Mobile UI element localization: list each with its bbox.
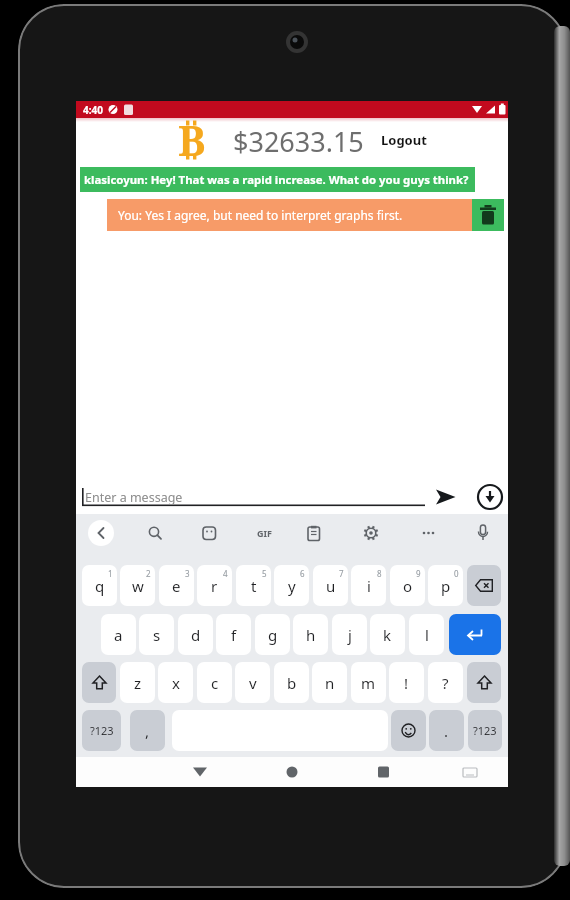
- button[interactable]: [82, 662, 116, 703]
- button[interactable]: You: Yes I agree, but need to interpret …: [107, 199, 472, 231]
- staticText: p: [441, 576, 451, 596]
- button[interactable]: c: [197, 662, 232, 703]
- staticText: 7: [339, 568, 344, 579]
- button[interactable]: GIF: [252, 523, 276, 543]
- button[interactable]: f: [216, 614, 251, 655]
- button[interactable]: i: [351, 565, 386, 606]
- button[interactable]: j: [332, 614, 367, 655]
- button[interactable]: b: [274, 662, 309, 703]
- staticText: i: [367, 576, 371, 596]
- button[interactable]: [359, 759, 407, 785]
- button[interactable]: k: [370, 614, 405, 655]
- staticText: 4:40: [83, 103, 103, 117]
- button[interactable]: t: [236, 565, 271, 606]
- staticText: d: [191, 625, 201, 645]
- button[interactable]: ?123: [82, 710, 121, 751]
- button[interactable]: .: [429, 710, 464, 751]
- button[interactable]: [268, 759, 316, 785]
- staticText: j: [348, 625, 352, 645]
- button[interactable]: d: [178, 614, 213, 655]
- staticText: GIF: [257, 527, 272, 539]
- button[interactable]: l: [409, 614, 444, 655]
- staticText: 0: [454, 568, 459, 579]
- staticText: e: [172, 576, 181, 596]
- staticText: o: [403, 576, 413, 596]
- staticText: 4: [223, 568, 228, 579]
- staticText: .: [444, 721, 449, 741]
- button[interactable]: z: [120, 662, 155, 703]
- staticText: You: Yes I agree, but need to interpret …: [118, 207, 403, 223]
- button[interactable]: [176, 759, 224, 785]
- button[interactable]: g: [255, 614, 290, 655]
- button[interactable]: Logout: [376, 129, 432, 151]
- button[interactable]: [474, 482, 506, 512]
- staticText: u: [326, 576, 336, 596]
- staticText: B: [178, 112, 206, 156]
- staticText: c: [211, 673, 219, 693]
- staticText: 1: [108, 568, 113, 579]
- button[interactable]: ?: [428, 662, 463, 703]
- button[interactable]: m: [351, 662, 386, 703]
- staticText: 9: [416, 568, 421, 579]
- staticText: l: [425, 625, 429, 645]
- staticText: a: [114, 625, 123, 645]
- staticText: y: [288, 576, 296, 596]
- staticText: v: [249, 673, 257, 693]
- button[interactable]: p: [428, 565, 463, 606]
- staticText: 6: [300, 568, 305, 579]
- button[interactable]: r: [197, 565, 232, 606]
- button[interactable]: [467, 662, 501, 703]
- button[interactable]: [426, 482, 460, 512]
- button[interactable]: [472, 199, 504, 231]
- staticText: 2: [146, 568, 151, 579]
- staticText: n: [325, 673, 335, 693]
- button[interactable]: [467, 565, 501, 606]
- button[interactable]: ,: [130, 710, 165, 751]
- button[interactable]: klasicoyun: Hey! That was a rapid increa…: [80, 167, 475, 192]
- staticText: ?123: [90, 723, 114, 738]
- staticText: Logout: [381, 131, 427, 149]
- button[interactable]: [88, 520, 114, 546]
- button[interactable]: v: [235, 662, 270, 703]
- staticText: ?: [442, 673, 449, 693]
- button[interactable]: n: [312, 662, 347, 703]
- staticText: 3: [185, 568, 190, 579]
- button[interactable]: y: [274, 565, 309, 606]
- staticText: !: [404, 673, 409, 693]
- button[interactable]: w: [120, 565, 155, 606]
- button[interactable]: x: [158, 662, 193, 703]
- staticText: klasicoyun: Hey! That was a rapid increa…: [84, 172, 469, 188]
- staticText: 5: [262, 568, 267, 579]
- staticText: w: [132, 576, 144, 596]
- button[interactable]: ?123: [468, 710, 502, 751]
- button[interactable]: o: [390, 565, 425, 606]
- staticText: z: [134, 673, 142, 693]
- button[interactable]: u: [313, 565, 348, 606]
- staticText: ,: [145, 721, 150, 741]
- button[interactable]: [391, 710, 426, 751]
- button[interactable]: !: [389, 662, 424, 703]
- button[interactable]: a: [101, 614, 136, 655]
- staticText: r: [211, 576, 218, 596]
- button[interactable]: e: [159, 565, 194, 606]
- button[interactable]: q: [82, 565, 117, 606]
- staticText: x: [172, 673, 180, 693]
- staticText: m: [361, 673, 376, 693]
- staticText: $32633.15: [233, 123, 364, 157]
- staticText: k: [383, 625, 392, 645]
- staticText: h: [306, 625, 316, 645]
- staticText: s: [153, 625, 161, 645]
- button[interactable]: s: [139, 614, 174, 655]
- staticText: b: [287, 673, 297, 693]
- staticText: Enter a message: [85, 489, 183, 506]
- staticText: ?123: [473, 723, 497, 738]
- staticText: t: [251, 576, 257, 596]
- staticText: q: [95, 576, 105, 596]
- staticText: 8: [377, 568, 382, 579]
- staticText: g: [268, 625, 278, 645]
- staticText: f: [231, 625, 237, 645]
- button[interactable]: [449, 614, 501, 655]
- button[interactable]: h: [293, 614, 328, 655]
